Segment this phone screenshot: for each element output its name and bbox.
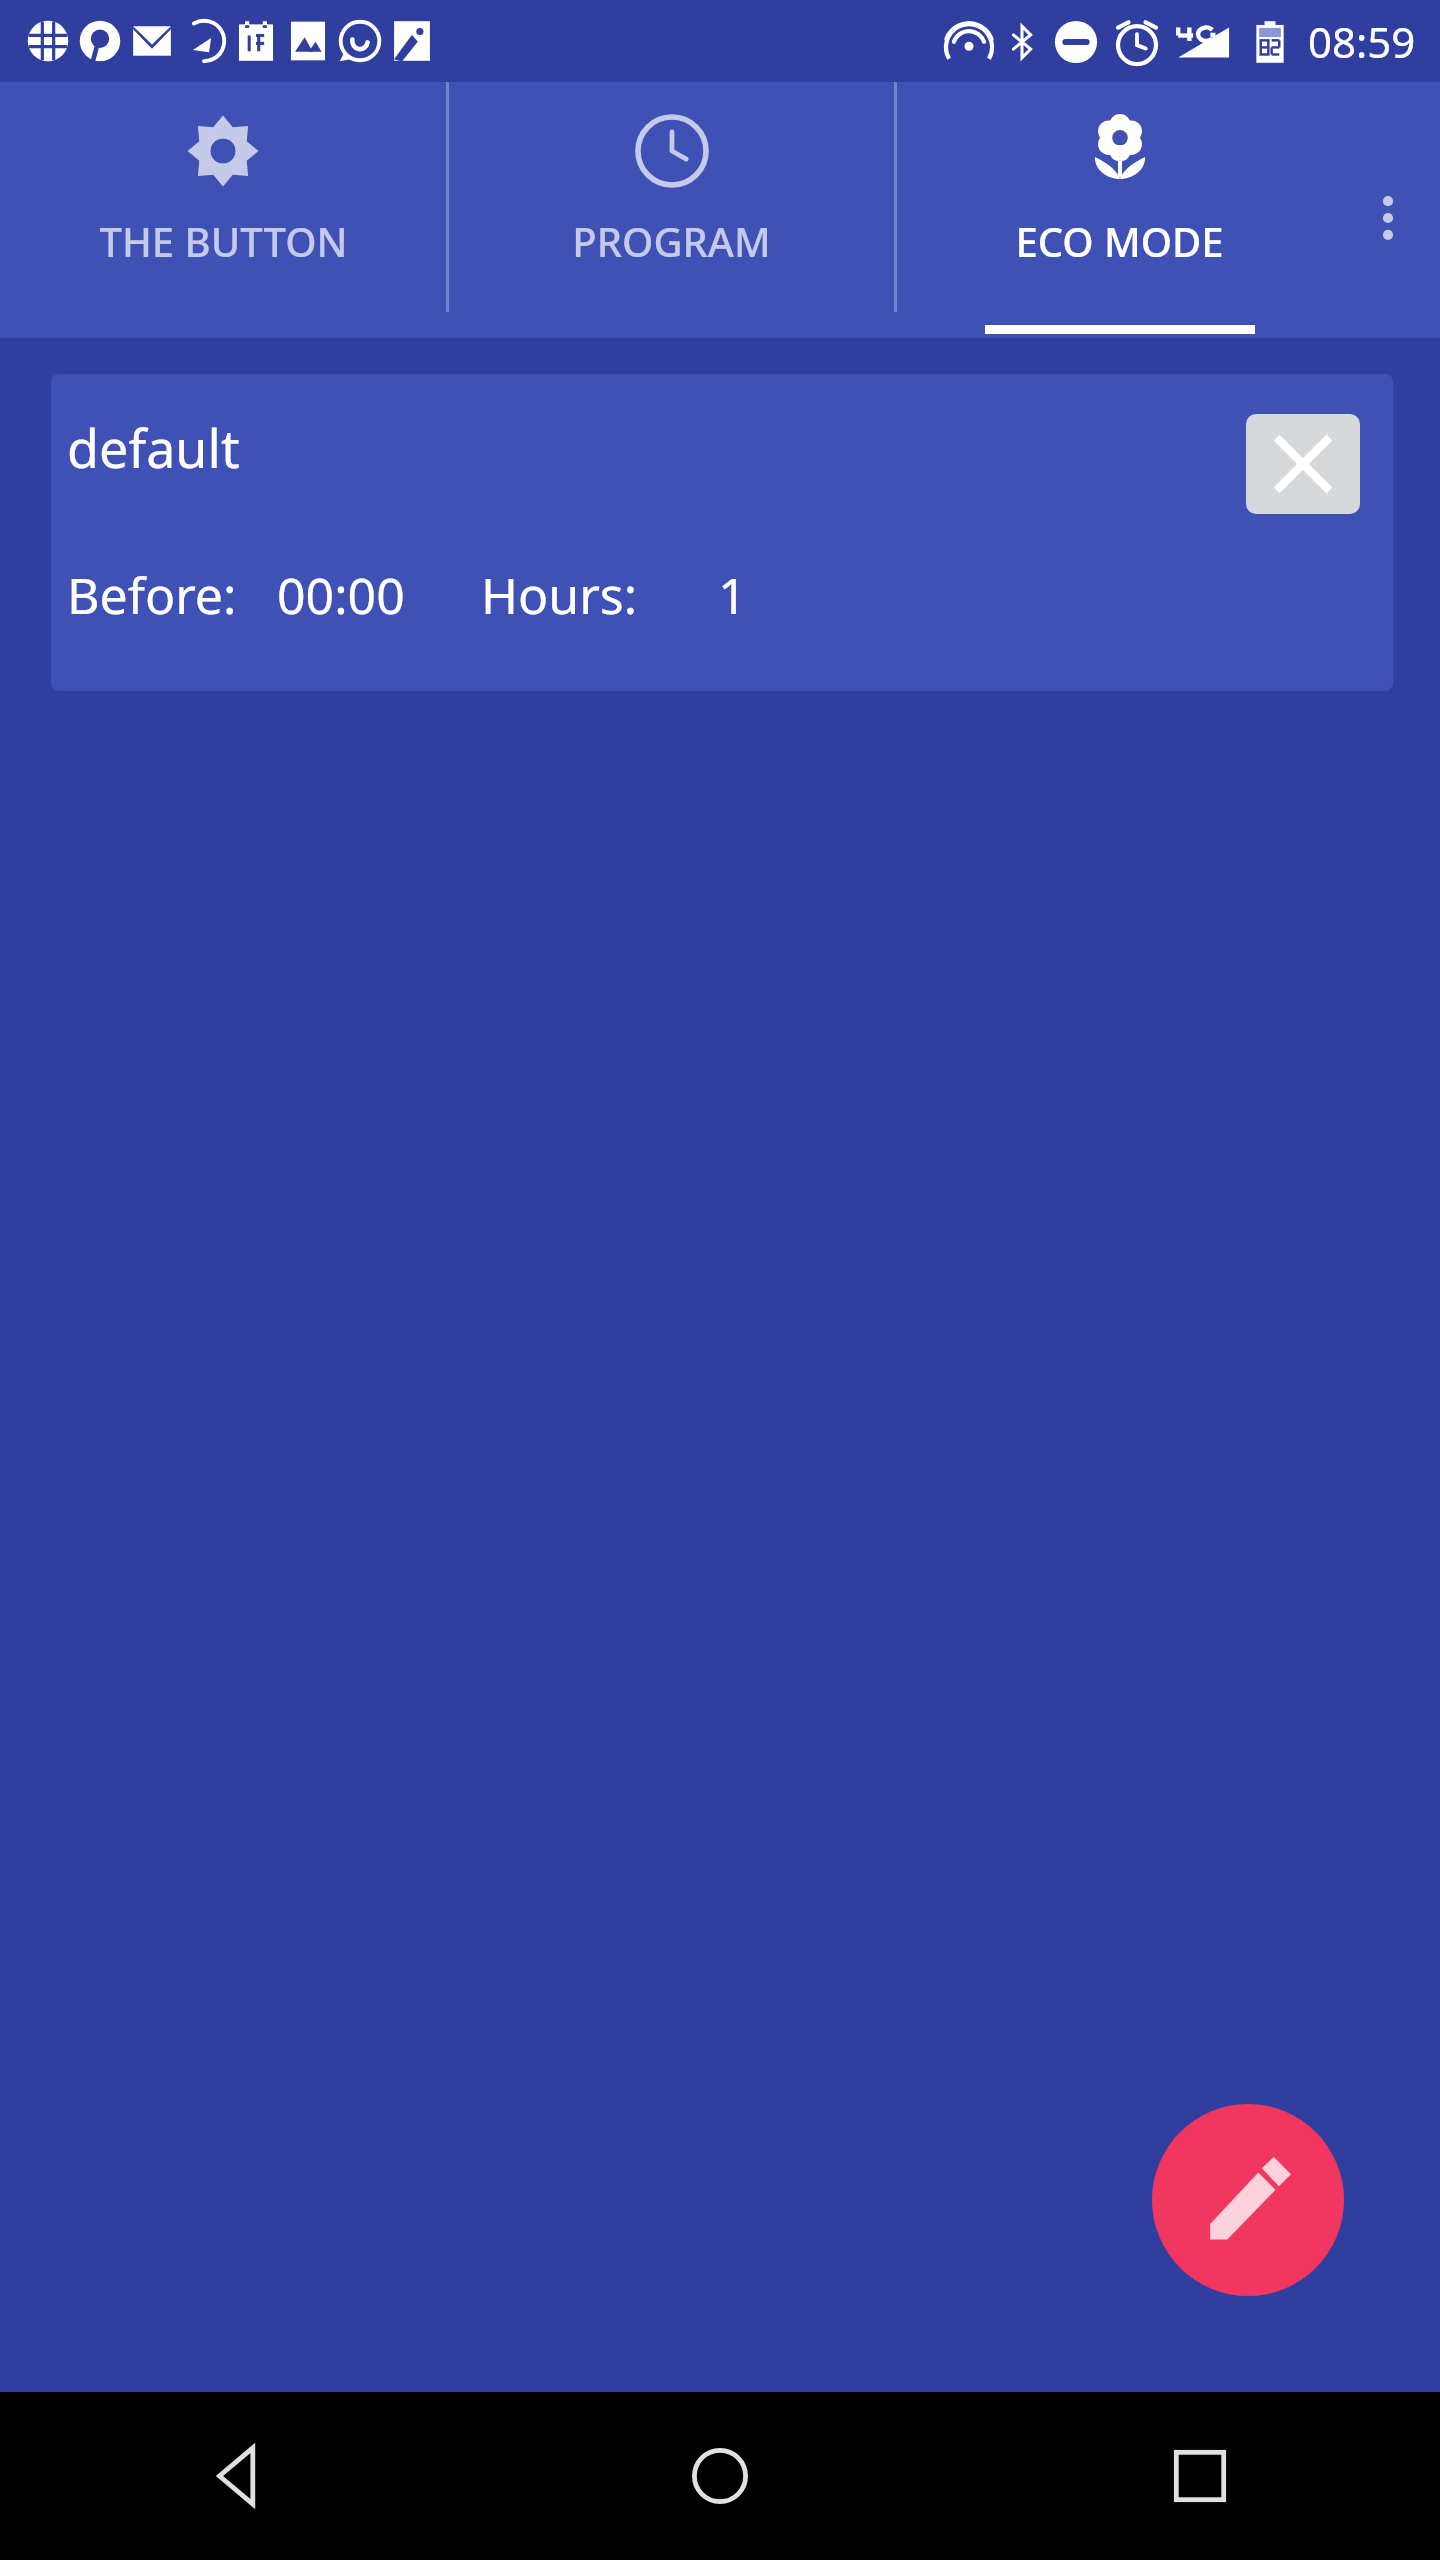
button[interactable]: ECO MODE xyxy=(897,82,1342,338)
staticText: Hours: xyxy=(481,561,638,629)
button[interactable]: THE BUTTON xyxy=(0,82,446,338)
staticText: default xyxy=(67,412,240,483)
staticText: 08:59 xyxy=(1308,13,1416,70)
button[interactable]: Home xyxy=(480,2392,960,2560)
button[interactable]: Recent apps xyxy=(960,2392,1440,2560)
button[interactable]: Back xyxy=(0,2392,480,2560)
button[interactable]: PROGRAM xyxy=(449,82,894,338)
staticText: Before: xyxy=(67,561,237,629)
button[interactable]: Delete xyxy=(1246,414,1360,514)
button[interactable]: default xyxy=(51,374,1393,691)
button[interactable]: More options xyxy=(1336,166,1440,270)
staticText: 00:00 xyxy=(277,561,405,629)
staticText: THE BUTTON xyxy=(99,214,348,268)
button[interactable]: Edit xyxy=(1152,2104,1344,2296)
staticText: ECO MODE xyxy=(1015,214,1224,268)
staticText: 1 xyxy=(718,561,747,629)
staticText: PROGRAM xyxy=(572,214,771,268)
